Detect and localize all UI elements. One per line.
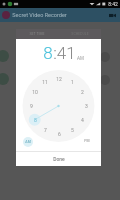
staticText: SCHEDULE: [71, 32, 89, 36]
staticText: 8: [34, 117, 37, 123]
staticText: 8:42: [108, 1, 118, 7]
staticText: 5: [71, 127, 74, 133]
staticText: 7: [44, 127, 47, 133]
staticText: 4: [81, 117, 84, 123]
staticText: AM: [77, 56, 84, 61]
staticText: 12: [56, 76, 62, 82]
staticText: Done: [53, 156, 65, 162]
staticText: SET TIME: [29, 32, 45, 36]
staticText: 9: [30, 103, 33, 109]
staticText: :41: [53, 43, 76, 63]
staticText: Secret Video Recorder: [12, 12, 67, 18]
staticText: 8: [43, 43, 53, 63]
button[interactable]: PM: [82, 136, 92, 146]
button[interactable]: Record video: [107, 10, 118, 21]
staticText: 3: [85, 103, 88, 109]
staticText: 2: [81, 89, 84, 95]
button[interactable]: Done: [16, 152, 101, 166]
staticText: PM: [84, 139, 90, 143]
staticText: 11: [42, 79, 48, 85]
button[interactable]: SET TIME: [16, 29, 58, 39]
staticText: AM: [25, 140, 31, 144]
staticText: 1: [71, 79, 74, 85]
button[interactable]: AM: [23, 137, 33, 147]
staticText: 6: [58, 131, 61, 137]
staticText: 10: [32, 89, 38, 95]
